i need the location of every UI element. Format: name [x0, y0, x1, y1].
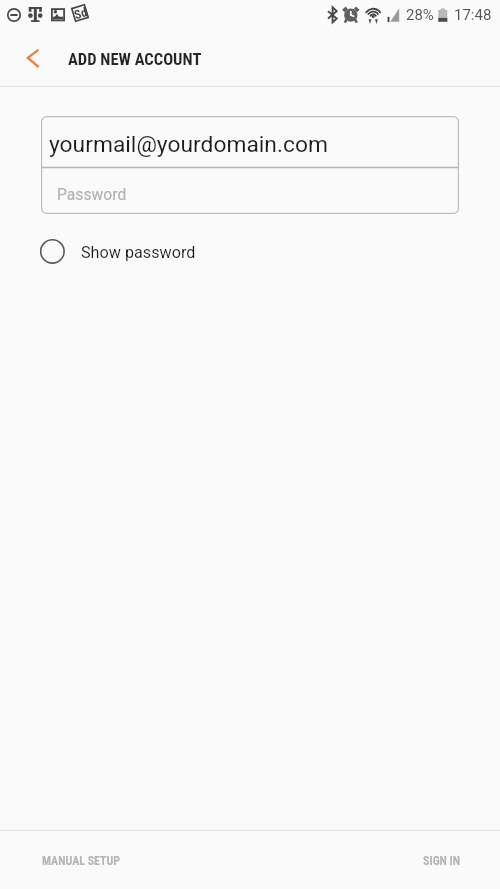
staticText: yourmail@yourdomain.com	[49, 131, 328, 158]
staticText: ADD NEW ACCOUNT	[68, 50, 202, 69]
button[interactable]: Password	[41, 167, 459, 214]
staticText: SIGN IN	[423, 854, 461, 868]
button[interactable]: Back	[9, 34, 57, 82]
button[interactable]: MANUAL SETUP	[0, 831, 141, 889]
button[interactable]: SIGN IN	[403, 831, 500, 889]
staticText: Sd	[72, 4, 89, 22]
staticText: Show password	[81, 243, 196, 262]
staticText: 17:48	[454, 6, 492, 24]
staticText: 28%	[406, 6, 434, 24]
button[interactable]: yourmail@yourdomain.com	[41, 116, 459, 167]
button[interactable]: Show password	[41, 227, 459, 277]
staticText: Password	[57, 185, 127, 203]
staticText: MANUAL SETUP	[42, 854, 121, 868]
